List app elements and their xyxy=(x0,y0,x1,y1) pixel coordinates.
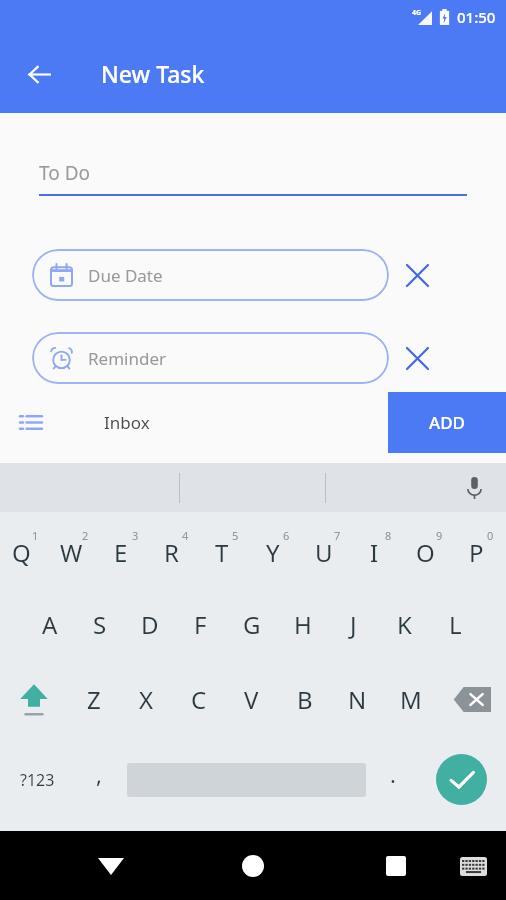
staticText: Reminder xyxy=(88,347,167,370)
button[interactable]: T xyxy=(200,512,251,587)
staticText: D xyxy=(141,608,159,641)
staticText: Z xyxy=(87,683,101,716)
staticText: 8 xyxy=(385,528,392,543)
button[interactable]: Z xyxy=(68,662,120,737)
staticText: To Do xyxy=(39,160,91,186)
button[interactable]: Done xyxy=(417,737,506,822)
button[interactable]: O xyxy=(404,512,455,587)
staticText: L xyxy=(449,608,462,641)
staticText: 5 xyxy=(232,528,239,543)
staticText: 1 xyxy=(32,528,39,543)
staticText: 9 xyxy=(436,528,443,543)
staticText: V xyxy=(244,683,259,716)
staticText: H xyxy=(294,608,312,641)
button[interactable]: Backspace xyxy=(437,662,506,737)
staticText: X xyxy=(139,683,154,716)
button[interactable]: V xyxy=(225,662,278,737)
staticText: 4 xyxy=(182,528,189,543)
staticText: I xyxy=(370,536,379,569)
staticText: 6 xyxy=(283,528,290,543)
button[interactable]: D xyxy=(125,587,175,662)
staticText: 0 xyxy=(487,528,494,543)
button[interactable]: G xyxy=(226,587,277,662)
button[interactable]: B xyxy=(278,662,331,737)
button[interactable]: R xyxy=(150,512,200,587)
button[interactable]: , xyxy=(75,737,123,822)
staticText: Due Date xyxy=(88,264,163,287)
staticText: 3 xyxy=(132,528,139,543)
button[interactable]: H xyxy=(277,587,328,662)
staticText: A xyxy=(42,608,58,641)
button[interactable]: I xyxy=(353,512,404,587)
staticText: P xyxy=(469,536,484,569)
button[interactable]: Due Date xyxy=(32,249,389,301)
staticText: , xyxy=(96,759,102,789)
button[interactable]: K xyxy=(379,587,430,662)
staticText: T xyxy=(215,536,229,569)
staticText: J xyxy=(350,608,357,641)
button[interactable]: Reminder xyxy=(32,332,389,384)
button[interactable]: Voice input xyxy=(454,468,494,508)
button[interactable]: Hide keyboard xyxy=(87,842,135,890)
button[interactable]: Space xyxy=(123,737,369,822)
staticText: K xyxy=(397,608,412,641)
staticText: 7 xyxy=(334,528,341,543)
button[interactable]: Inbox xyxy=(0,411,170,434)
button[interactable]: U xyxy=(302,512,353,587)
staticText: ?123 xyxy=(20,769,55,791)
staticText: G xyxy=(243,608,261,641)
staticText: . xyxy=(390,759,396,789)
staticText: B xyxy=(297,683,313,716)
button[interactable]: C xyxy=(172,662,225,737)
button[interactable]: Clear reminder xyxy=(389,330,445,386)
button[interactable]: X xyxy=(120,662,172,737)
staticText: 2 xyxy=(82,528,89,543)
button[interactable]: Shift xyxy=(0,662,68,737)
button[interactable]: ?123 xyxy=(0,737,75,822)
button[interactable]: M xyxy=(384,662,437,737)
button[interactable]: Q xyxy=(0,512,50,587)
button[interactable]: Recents xyxy=(372,842,420,890)
staticText: New Task xyxy=(101,58,205,89)
staticText: E xyxy=(114,536,128,569)
staticText: U xyxy=(315,536,333,569)
staticText: N xyxy=(348,683,367,716)
button[interactable]: L xyxy=(430,587,481,662)
staticText: ADD xyxy=(429,411,465,434)
staticText: R xyxy=(164,536,179,569)
staticText: Inbox xyxy=(104,411,150,434)
button[interactable]: . xyxy=(369,737,417,822)
button[interactable]: P xyxy=(455,512,506,587)
button[interactable]: W xyxy=(50,512,100,587)
staticText: Y xyxy=(266,536,280,569)
button[interactable]: N xyxy=(331,662,384,737)
staticText: Q xyxy=(12,536,31,569)
button[interactable]: ADD xyxy=(388,392,506,453)
staticText: 01:50 xyxy=(457,7,496,27)
staticText: F xyxy=(194,608,207,641)
staticText: C xyxy=(191,683,207,716)
staticText: M xyxy=(400,683,422,716)
button[interactable]: S xyxy=(75,587,125,662)
staticText: 4G xyxy=(412,8,422,18)
button[interactable]: Y xyxy=(251,512,302,587)
button[interactable]: J xyxy=(328,587,379,662)
staticText: W xyxy=(60,536,83,569)
button[interactable]: F xyxy=(175,587,226,662)
button[interactable]: A xyxy=(25,587,75,662)
button[interactable]: E xyxy=(100,512,150,587)
button[interactable]: Back xyxy=(14,49,64,99)
button[interactable]: Clear due date xyxy=(389,247,445,303)
button[interactable]: Switch keyboard xyxy=(451,844,495,888)
staticText: S xyxy=(93,608,107,641)
button[interactable]: Home xyxy=(229,842,277,890)
staticText: O xyxy=(416,536,435,569)
